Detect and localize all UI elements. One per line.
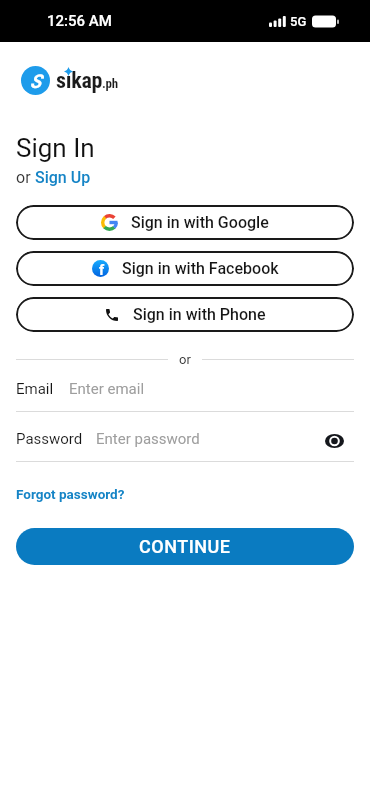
button[interactable]: S xyxy=(21,66,118,95)
staticText: Enter email xyxy=(69,380,145,398)
staticText: or xyxy=(179,352,191,367)
staticText: Sign in with Phone xyxy=(133,305,266,324)
button[interactable]: Forgot password? xyxy=(16,486,125,502)
staticText: Sign in with Google xyxy=(131,213,269,232)
staticText: Enter password xyxy=(96,430,200,448)
button[interactable]: f xyxy=(16,251,354,286)
staticText: 5G xyxy=(290,14,307,29)
staticText: or xyxy=(16,168,35,187)
staticText: Sign In xyxy=(16,133,95,163)
staticText: f xyxy=(99,262,105,277)
staticText: sıkap.ph xyxy=(56,68,118,94)
button[interactable]: Sign in with Google xyxy=(16,205,354,240)
staticText: Email xyxy=(16,380,54,398)
staticText: Sign in with Facebook xyxy=(122,259,279,278)
button[interactable]: CONTINUE xyxy=(16,528,354,565)
button[interactable] xyxy=(325,434,344,448)
staticText: Password xyxy=(16,430,83,448)
staticText: CONTINUE xyxy=(139,536,231,557)
button[interactable]: Sign Up xyxy=(35,168,91,187)
button[interactable]: Sign in with Phone xyxy=(16,297,354,332)
staticText: 12:56 AM xyxy=(47,12,112,30)
staticText: S xyxy=(30,70,42,92)
